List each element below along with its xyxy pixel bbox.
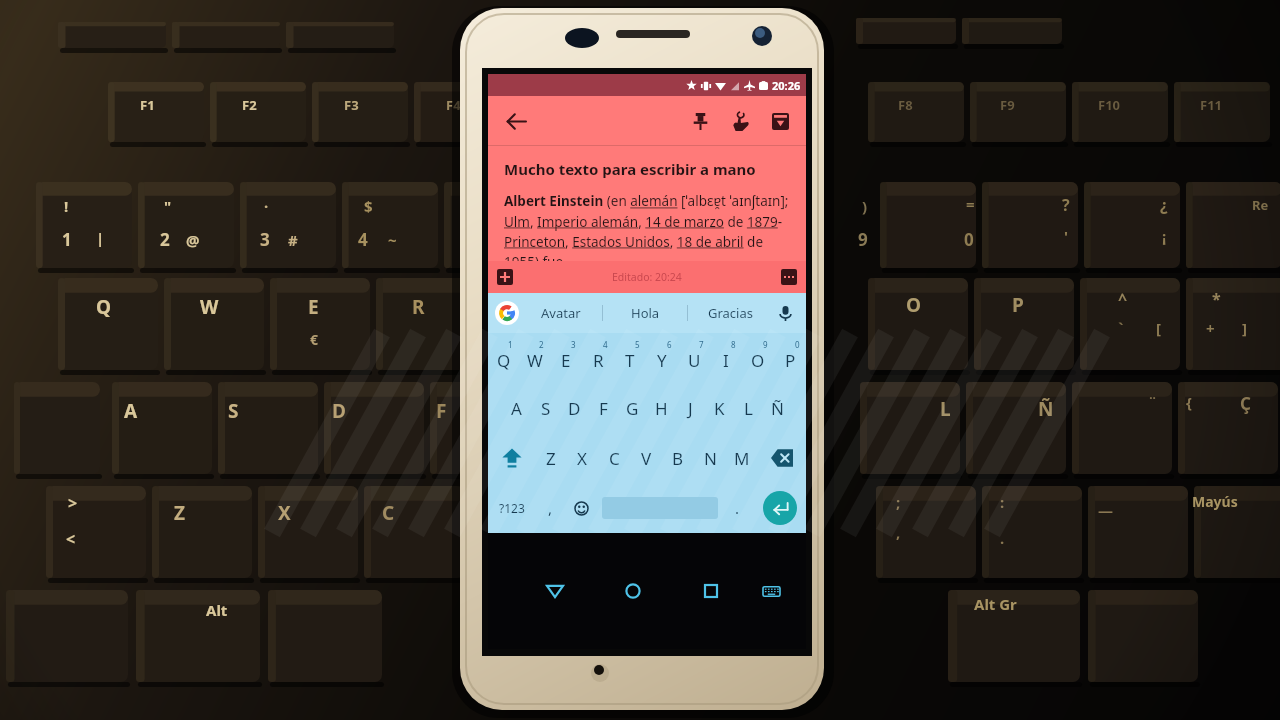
button[interactable]: Pin note: [680, 101, 720, 141]
staticText: F11: [1200, 96, 1223, 114]
button[interactable]: 6: [646, 333, 678, 383]
button[interactable]: A: [502, 383, 531, 433]
button[interactable]: 3: [550, 333, 582, 383]
staticText: 4: [358, 228, 368, 251]
staticText: 3: [260, 228, 270, 251]
button[interactable]: L: [734, 383, 763, 433]
staticText: F2: [242, 96, 257, 114]
staticText: Alt: [206, 600, 228, 620]
staticText: O: [751, 349, 765, 372]
button[interactable]: 9: [742, 333, 774, 383]
staticText: Q: [497, 349, 511, 372]
staticText: 7: [699, 339, 704, 350]
staticText: P: [1012, 292, 1024, 318]
staticText: Alt Gr: [974, 594, 1017, 614]
staticText: W: [200, 294, 219, 320]
button[interactable]: Backspace: [758, 433, 806, 483]
staticText: ": [164, 196, 172, 216]
staticText: C: [609, 447, 620, 470]
staticText: Q: [96, 294, 112, 320]
button[interactable]: Google search: [495, 301, 519, 325]
button[interactable]: C: [598, 433, 630, 483]
button[interactable]: Ñ: [763, 383, 792, 433]
staticText: 1: [62, 228, 72, 251]
button[interactable]: Gracias: [688, 293, 772, 333]
staticText: C: [382, 500, 395, 526]
button[interactable]: F: [589, 383, 618, 433]
staticText: Z: [174, 500, 186, 526]
staticText: ¡: [1162, 226, 1167, 246]
staticText: 6: [667, 339, 672, 350]
button[interactable]: 2: [519, 333, 550, 383]
staticText: L: [744, 397, 753, 420]
button[interactable]: Voice input: [772, 300, 798, 326]
staticText: F10: [1098, 96, 1121, 114]
staticText: Albert Einstein (en alemán [ˈalbɛɐ̯t ˈaɪ…: [504, 192, 796, 261]
staticText: ?: [1062, 194, 1070, 216]
button[interactable]: Avatar: [519, 293, 602, 333]
button[interactable]: H: [647, 383, 676, 433]
button[interactable]: Enter: [753, 483, 806, 533]
button[interactable]: 8: [710, 333, 742, 383]
button[interactable]: .: [722, 483, 753, 533]
button[interactable]: Hola: [603, 293, 687, 333]
button[interactable]: X: [566, 433, 598, 483]
button[interactable]: Back: [531, 533, 579, 649]
staticText: Re: [1252, 196, 1269, 214]
button[interactable]: More options: [781, 269, 797, 285]
staticText: F9: [1000, 96, 1015, 114]
staticText: N: [704, 447, 717, 470]
button[interactable]: G: [618, 383, 647, 433]
button[interactable]: 1: [488, 333, 519, 383]
button[interactable]: ,: [535, 483, 566, 533]
staticText: 2: [539, 339, 544, 350]
button[interactable]: Shift: [488, 433, 535, 483]
button[interactable]: Z: [535, 433, 566, 483]
button[interactable]: J: [676, 383, 705, 433]
staticText: Ç: [1240, 392, 1251, 415]
staticText: V: [641, 447, 652, 470]
staticText: H: [655, 397, 668, 420]
button[interactable]: Home: [608, 533, 657, 649]
button[interactable]: N: [694, 433, 726, 483]
button[interactable]: V: [630, 433, 662, 483]
button[interactable]: Back: [496, 101, 536, 141]
staticText: D: [332, 398, 346, 424]
button[interactable]: 7: [678, 333, 710, 383]
staticText: [: [1156, 318, 1161, 338]
button[interactable]: K: [705, 383, 734, 433]
staticText: Gracias: [708, 304, 753, 322]
button[interactable]: S: [531, 383, 560, 433]
staticText: :: [1000, 492, 1005, 512]
button[interactable]: Emoji: [566, 483, 597, 533]
button[interactable]: Archive: [760, 101, 800, 141]
button[interactable]: Handwriting: [720, 101, 760, 141]
button[interactable]: 0: [774, 333, 806, 383]
staticText: S: [541, 397, 551, 420]
staticText: ,: [896, 522, 901, 542]
staticText: F8: [898, 96, 913, 114]
staticText: U: [688, 349, 701, 372]
staticText: Editado: 20:24: [612, 270, 682, 284]
button[interactable]: B: [662, 433, 694, 483]
staticText: ¿: [1160, 194, 1168, 216]
button[interactable]: Mucho texto para escribir a mano: [488, 146, 806, 261]
staticText: Ñ: [771, 397, 784, 420]
staticText: |: [96, 228, 105, 248]
staticText: ;: [896, 492, 901, 512]
staticText: R: [412, 294, 425, 320]
staticText: F1: [140, 96, 155, 114]
button[interactable]: Space: [597, 483, 722, 533]
button[interactable]: Recent apps: [686, 533, 735, 649]
staticText: ¨: [1148, 392, 1157, 412]
button[interactable]: ?123: [488, 483, 535, 533]
button[interactable]: 4: [582, 333, 614, 383]
staticText: ]: [1242, 318, 1247, 338]
button[interactable]: 5: [614, 333, 646, 383]
staticText: 9: [858, 228, 868, 251]
button[interactable]: M: [726, 433, 758, 483]
button[interactable]: D: [560, 383, 589, 433]
button[interactable]: Add: [497, 269, 513, 285]
button[interactable]: Hide keyboard: [747, 533, 796, 649]
staticText: X: [577, 447, 587, 470]
